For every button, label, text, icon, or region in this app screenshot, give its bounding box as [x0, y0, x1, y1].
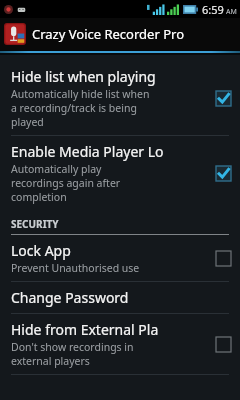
- staticText: Prevent Unauthorised use: [11, 261, 140, 275]
- staticText: recordings again after: [11, 176, 121, 190]
- staticText: AM: [226, 7, 237, 17]
- staticText: Change Password: [11, 288, 129, 307]
- button[interactable]: Unchecked: [214, 249, 232, 267]
- staticText: Automatically hide list when: [11, 87, 150, 101]
- staticText: Crazy Voice Recorder Pro: [32, 25, 184, 43]
- staticText: SECURITY: [11, 217, 59, 231]
- staticText: 6:59: [202, 2, 224, 17]
- staticText: Automatically play: [11, 162, 102, 176]
- button[interactable]: Unchecked: [214, 335, 232, 353]
- staticText: completion: [11, 190, 67, 204]
- staticText: Hide from External Pla: [11, 320, 159, 339]
- staticText: Hide list when playing: [11, 67, 156, 86]
- staticText: played: [11, 115, 44, 129]
- button[interactable]: Checked: [214, 164, 232, 182]
- staticText: Don't show recordings in: [11, 340, 134, 354]
- other: App icon: [4, 23, 26, 45]
- staticText: Lock App: [11, 241, 71, 260]
- button[interactable]: Hide from External Pla: [0, 314, 240, 374]
- staticText: a recording/track is being: [11, 101, 137, 115]
- button[interactable]: App icon: [0, 18, 240, 50]
- button[interactable]: Hide list when playing: [0, 61, 240, 135]
- staticText: external players: [11, 354, 90, 368]
- button[interactable]: Lock App: [0, 235, 240, 281]
- button[interactable]: Checked: [214, 89, 232, 107]
- button[interactable]: Change Password: [0, 282, 240, 313]
- button[interactable]: Enable Media Player Lo: [0, 136, 240, 210]
- staticText: Enable Media Player Lo: [11, 142, 164, 161]
